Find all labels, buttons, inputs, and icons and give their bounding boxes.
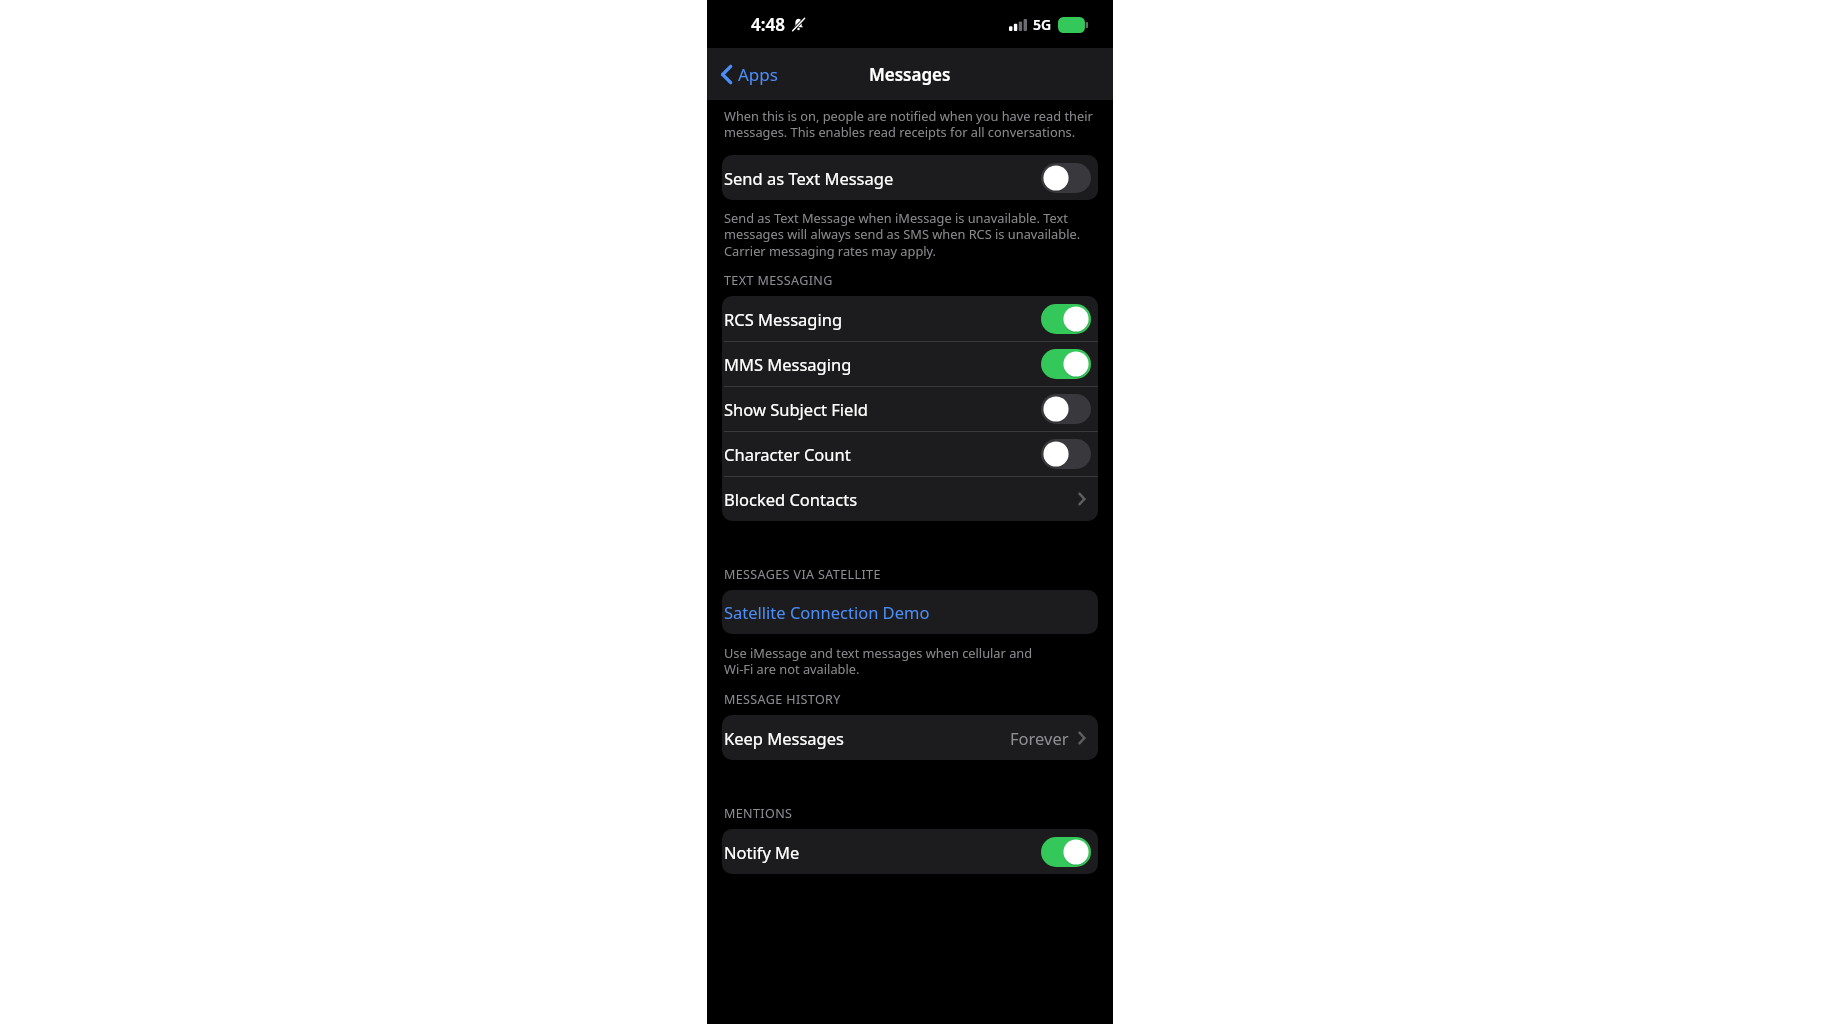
staticText: Forever [1010,727,1069,749]
button[interactable]: Send as Text Message toggle [1041,163,1091,193]
staticText: Satellite Connection Demo [724,601,930,623]
button[interactable]: RCS Messaging [722,296,1098,341]
button[interactable]: Apps [715,55,784,94]
button[interactable]: Notify Me toggle [1041,837,1091,867]
button[interactable]: Send as Text Message [722,155,1098,200]
staticText: RCS Messaging [724,308,1041,330]
staticText: MESSAGES VIA SATELLITE [724,566,881,583]
staticText: Send as Text Message when iMessage is un… [724,209,1096,260]
staticText: MESSAGE HISTORY [724,691,841,708]
staticText: 5G [1033,15,1052,34]
staticText: Show Subject Field [724,398,1041,420]
button[interactable]: Show Subject Field toggle [1041,394,1091,424]
staticText: When this is on, people are notified whe… [724,107,1096,141]
staticText: Character Count [724,443,1041,465]
staticText: Blocked Contacts [724,488,1078,510]
staticText: TEXT MESSAGING [724,272,833,289]
staticText: MENTIONS [724,805,793,822]
button[interactable]: Character Count [722,431,1098,476]
button[interactable]: Blocked Contacts [722,476,1098,521]
staticText: Send as Text Message [724,167,1041,189]
staticText: Messages [869,63,951,86]
staticText: Use iMessage and text messages when cell… [724,644,1033,678]
staticText: Notify Me [724,841,1041,863]
button[interactable]: RCS Messaging toggle [1041,304,1091,334]
button[interactable]: Satellite Connection Demo [722,590,1098,634]
button[interactable]: Character Count toggle [1041,439,1091,469]
button[interactable]: Show Subject Field [722,386,1098,431]
button[interactable]: Keep Messages [722,715,1098,760]
button[interactable]: MMS Messaging toggle [1041,349,1091,379]
staticText: MMS Messaging [724,353,1041,375]
staticText: 4:48 [751,13,785,36]
staticText: Apps [738,63,778,86]
button[interactable]: Notify Me [722,829,1098,874]
button[interactable]: MMS Messaging [722,341,1098,386]
staticText: Keep Messages [724,727,1010,749]
